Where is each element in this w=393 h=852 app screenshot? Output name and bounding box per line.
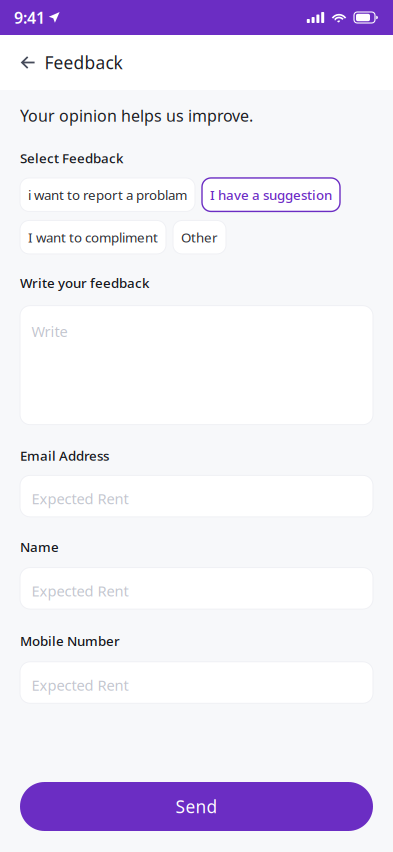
button[interactable]: Write: [20, 306, 373, 425]
button[interactable]: Expected Rent: [20, 662, 373, 703]
staticText: Email Address: [20, 447, 109, 464]
staticText: Select Feedback: [20, 149, 123, 167]
button[interactable]: Expected Rent: [20, 475, 373, 517]
staticText: Write: [31, 322, 67, 341]
staticText: Write your feedback: [20, 274, 149, 292]
staticText: 9:41: [14, 7, 45, 28]
button[interactable]: Send: [20, 782, 373, 831]
button[interactable]: Expected Rent: [20, 568, 373, 609]
staticText: Your opinion helps us improve.: [20, 105, 253, 126]
staticText: i want to report a problam: [28, 186, 187, 204]
staticText: Send: [175, 795, 217, 818]
button[interactable]: I have a suggestion: [202, 178, 340, 211]
staticText: Expected Rent: [31, 489, 128, 508]
staticText: Name: [20, 538, 59, 556]
button[interactable]: Back: [21, 45, 44, 79]
staticText: Other: [181, 228, 218, 246]
staticText: Expected Rent: [31, 675, 128, 695]
staticText: Expected Rent: [31, 581, 128, 601]
button[interactable]: i want to report a problam: [20, 178, 195, 211]
staticText: I have a suggestion: [210, 186, 332, 204]
button[interactable]: Other: [173, 220, 226, 254]
staticText: Mobile Number: [20, 632, 120, 650]
staticText: I want to compliment: [28, 228, 158, 246]
button[interactable]: I want to compliment: [20, 220, 166, 254]
staticText: Feedback: [44, 51, 122, 74]
